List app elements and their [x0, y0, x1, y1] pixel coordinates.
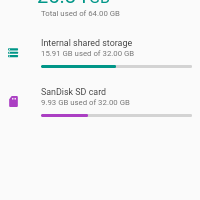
- staticText: Internal shared storage: [41, 38, 133, 48]
- staticText: 15.91 GB used of 32.00 GB: [41, 49, 135, 58]
- staticText: 25.84: [37, 0, 88, 7]
- button[interactable]: SanDisk SD card: [0, 82, 200, 131]
- staticText: Total used of 64.00 GB: [41, 9, 120, 18]
- staticText: 9.93 GB used of 32.00 GB: [41, 98, 130, 107]
- other: SanDisk SD card: [7, 95, 20, 108]
- button[interactable]: Internal shared storage: [0, 33, 200, 82]
- staticText: GB: [89, 0, 110, 7]
- staticText: SanDisk SD card: [41, 87, 107, 97]
- other: Internal shared storage: [7, 46, 20, 59]
